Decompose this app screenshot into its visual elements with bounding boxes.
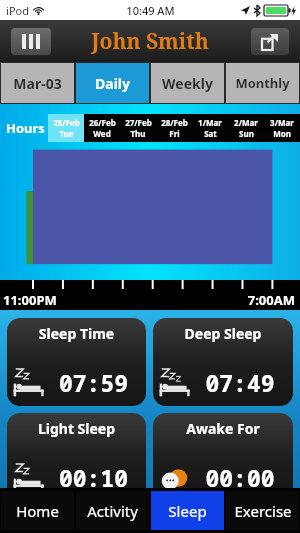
button[interactable]: Home	[1, 491, 74, 530]
staticText: 10:49 AM	[126, 3, 175, 18]
staticText: 11:00PM	[3, 291, 57, 309]
staticText: Daily	[95, 74, 130, 93]
staticText: John Smith	[91, 27, 209, 56]
staticText: 00:00	[192, 462, 288, 493]
button[interactable]: Sleep	[151, 491, 224, 530]
staticText: Mar-03	[13, 74, 62, 93]
staticText: Home	[16, 501, 59, 521]
button[interactable]: Menu	[11, 28, 51, 55]
button[interactable]: 2/Mar	[228, 114, 264, 142]
button[interactable]: Activity	[76, 491, 149, 530]
staticText: 07:59	[46, 367, 141, 398]
staticText: Monthly	[235, 74, 290, 92]
staticText: Light Sleep	[7, 419, 146, 438]
button[interactable]: Deep Sleep	[153, 318, 293, 406]
button[interactable]: 1/Mar	[192, 114, 228, 142]
button[interactable]: Weekly	[151, 63, 224, 103]
staticText: 27/Feb	[125, 117, 152, 128]
staticText: Sleep	[168, 501, 207, 521]
staticText: Thu	[130, 128, 146, 139]
button[interactable]: 27/Feb	[120, 114, 156, 142]
button[interactable]: 26/Feb	[84, 114, 120, 142]
staticText: Awake For	[153, 419, 293, 438]
staticText: Tue	[59, 128, 74, 139]
staticText: 3/Mar	[270, 117, 294, 128]
staticText: Wed	[93, 128, 111, 139]
button[interactable]: Sleep Time	[7, 318, 146, 406]
button[interactable]: 28/Feb	[156, 114, 192, 142]
button[interactable]: Light Sleep	[7, 413, 146, 501]
button[interactable]: Share	[251, 28, 289, 55]
staticText: Sleep Time	[7, 324, 146, 343]
staticText: 7:00AM	[247, 291, 295, 309]
staticText: Hours	[6, 119, 48, 137]
staticText: 00:10	[46, 462, 141, 493]
staticText: Mon	[273, 128, 291, 139]
button[interactable]: Awake For	[153, 413, 293, 501]
staticText: 1/Mar	[198, 117, 222, 128]
button[interactable]: 3/Mar	[264, 114, 300, 142]
staticText: Sat	[204, 128, 217, 139]
staticText: Fri	[169, 128, 180, 139]
staticText: 25/Feb	[53, 117, 80, 128]
button[interactable]: Exercise	[226, 491, 299, 530]
staticText: 28/Feb	[161, 117, 188, 128]
staticText: Deep Sleep	[153, 324, 293, 343]
staticText: Exercise	[234, 501, 292, 521]
staticText: Activity	[87, 501, 138, 521]
staticText: Sun	[239, 128, 254, 139]
staticText: iPod	[6, 3, 29, 18]
staticText: 07:49	[192, 367, 288, 398]
button[interactable]: Daily	[76, 63, 149, 103]
button[interactable]: Monthly	[226, 63, 299, 103]
staticText: 2/Mar	[234, 117, 258, 128]
staticText: Weekly	[162, 74, 213, 93]
button[interactable]: Mar-03	[1, 63, 74, 103]
staticText: 26/Feb	[89, 117, 116, 128]
button[interactable]: 25/Feb	[48, 114, 84, 142]
